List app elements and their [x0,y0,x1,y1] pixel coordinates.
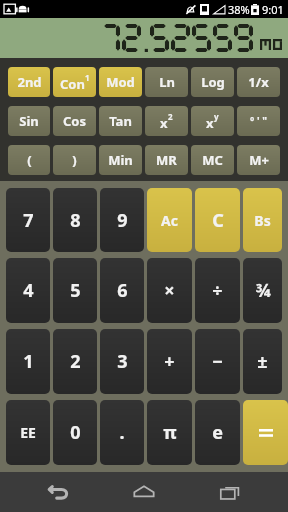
button[interactable]: 4 [6,258,50,323]
staticText: Cos [63,112,86,130]
button[interactable]: Ac [147,188,192,252]
button[interactable]: Mod [99,67,142,97]
button[interactable]: ) [53,145,96,175]
staticText: Bs [254,211,271,230]
staticText: Tan [109,112,132,130]
button[interactable]: ÷ [195,258,240,323]
staticText: 4 [23,278,34,303]
button[interactable]: 6 [100,258,144,323]
button[interactable]: MR [145,145,188,175]
button[interactable]: Bs [243,188,282,252]
button[interactable]: e [195,400,240,465]
staticText: e [212,420,223,445]
button[interactable]: Cos [53,106,96,136]
staticText: M+ [249,151,269,169]
staticText: ÷ [212,278,223,303]
button[interactable]: 1/x [237,67,280,97]
staticText: Sin [19,112,39,130]
button[interactable]: ( [8,145,50,175]
staticText: ¾ [255,278,271,303]
button[interactable]: . [100,400,144,465]
button[interactable]: ± [243,329,282,394]
staticText: 9 [117,208,128,233]
staticText: MR [156,151,177,169]
staticText: MC [202,151,223,169]
staticText: ± [257,349,268,374]
staticText: y [214,111,219,122]
staticText: ( [27,151,32,169]
staticText: C [212,208,224,233]
button[interactable]: C [195,188,240,252]
button[interactable]: 7 [6,188,50,252]
staticText: 0 [70,420,81,445]
staticText: EE [20,423,36,442]
staticText: + [164,349,175,374]
staticText: 1/x [248,73,269,91]
staticText: Log [201,73,225,91]
staticText: π [163,420,177,445]
staticText: × [164,278,175,303]
staticText: Ln [159,73,175,91]
button[interactable]: + [147,329,192,394]
staticText: 1 [85,72,90,83]
staticText: 8 [70,208,81,233]
button[interactable]: Back [30,472,86,512]
button[interactable]: 3 [100,329,144,394]
button[interactable]: ¾ [243,258,282,323]
button[interactable]: Min [99,145,142,175]
button[interactable]: Home [116,472,172,512]
staticText: 5 [70,278,81,303]
button[interactable]: 2nd [8,67,50,97]
button[interactable]: x [145,106,188,136]
button[interactable]: 5 [53,258,97,323]
staticText: Con [60,75,85,93]
staticText: 7 [23,208,34,233]
button[interactable]: M+ [237,145,280,175]
button[interactable]: Ln [145,67,188,97]
button[interactable]: Con [53,67,96,97]
staticText: Min [108,151,133,169]
button[interactable]: 1 [6,329,50,394]
button[interactable]: Log [191,67,234,97]
button[interactable]: × [147,258,192,323]
button[interactable]: − [195,329,240,394]
staticText: 2nd [17,73,42,91]
staticText: 38% [228,2,250,17]
button[interactable]: Sin [8,106,50,136]
button[interactable]: EE [6,400,50,465]
staticText: ° ' " [250,114,267,128]
staticText: − [212,349,223,374]
staticText: 9:01 [262,2,284,17]
staticText: 6 [117,278,128,303]
staticText: x [160,114,168,132]
staticText: x [206,114,214,132]
button[interactable]: x [191,106,234,136]
staticText: 1 [23,349,34,374]
staticText: ) [72,151,77,169]
staticText: Ac [161,211,178,230]
button[interactable]: Tan [99,106,142,136]
button[interactable]: 8 [53,188,97,252]
button[interactable]: ° ' " [237,106,280,136]
staticText: 3 [117,349,128,374]
button[interactable]: MC [191,145,234,175]
staticText: 2 [70,349,81,374]
staticText: . [119,420,125,445]
button[interactable]: π [147,400,192,465]
staticText: Mod [106,73,135,91]
button[interactable]: Recent apps [202,472,258,512]
button[interactable]: 2 [53,329,97,394]
button[interactable]: 0 [53,400,97,465]
button[interactable]: 9 [100,188,144,252]
staticText: 2 [168,111,173,122]
button[interactable] [243,400,288,465]
